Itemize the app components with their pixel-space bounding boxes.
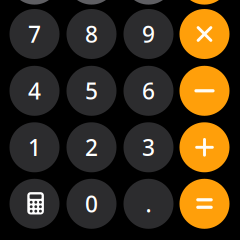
button[interactable]: 6 <box>123 66 173 116</box>
button[interactable]: 7 <box>9 9 59 59</box>
staticText: 7 <box>28 19 41 49</box>
button[interactable]: . <box>123 179 173 229</box>
button[interactable]: Multiply <box>179 9 229 59</box>
button[interactable]: 8 <box>66 9 116 59</box>
button[interactable]: Add <box>179 122 229 172</box>
button[interactable]: Subtract <box>179 66 229 116</box>
staticText: 0 <box>85 189 98 219</box>
button[interactable]: 0 <box>66 179 116 229</box>
staticText: 1 <box>28 132 41 162</box>
button[interactable]: Equals <box>179 179 229 229</box>
staticText: . <box>145 189 151 219</box>
button[interactable]: Calculator <box>9 179 59 229</box>
staticText: 6 <box>142 76 155 106</box>
button[interactable]: 1 <box>9 122 59 172</box>
button[interactable]: 4 <box>9 66 59 116</box>
staticText: 4 <box>28 76 41 106</box>
button[interactable]: 2 <box>66 122 116 172</box>
staticText: 8 <box>85 19 98 49</box>
button[interactable]: Divide <box>179 0 229 5</box>
button[interactable]: Clear <box>9 0 59 5</box>
staticText: 3 <box>142 132 155 162</box>
staticText: 5 <box>85 76 98 106</box>
button[interactable]: Percent <box>123 0 173 5</box>
button[interactable]: 9 <box>123 9 173 59</box>
button[interactable]: 5 <box>66 66 116 116</box>
staticText: 9 <box>142 19 155 49</box>
button[interactable]: Plus Minus <box>66 0 116 5</box>
button[interactable]: 3 <box>123 122 173 172</box>
staticText: 2 <box>85 132 98 162</box>
